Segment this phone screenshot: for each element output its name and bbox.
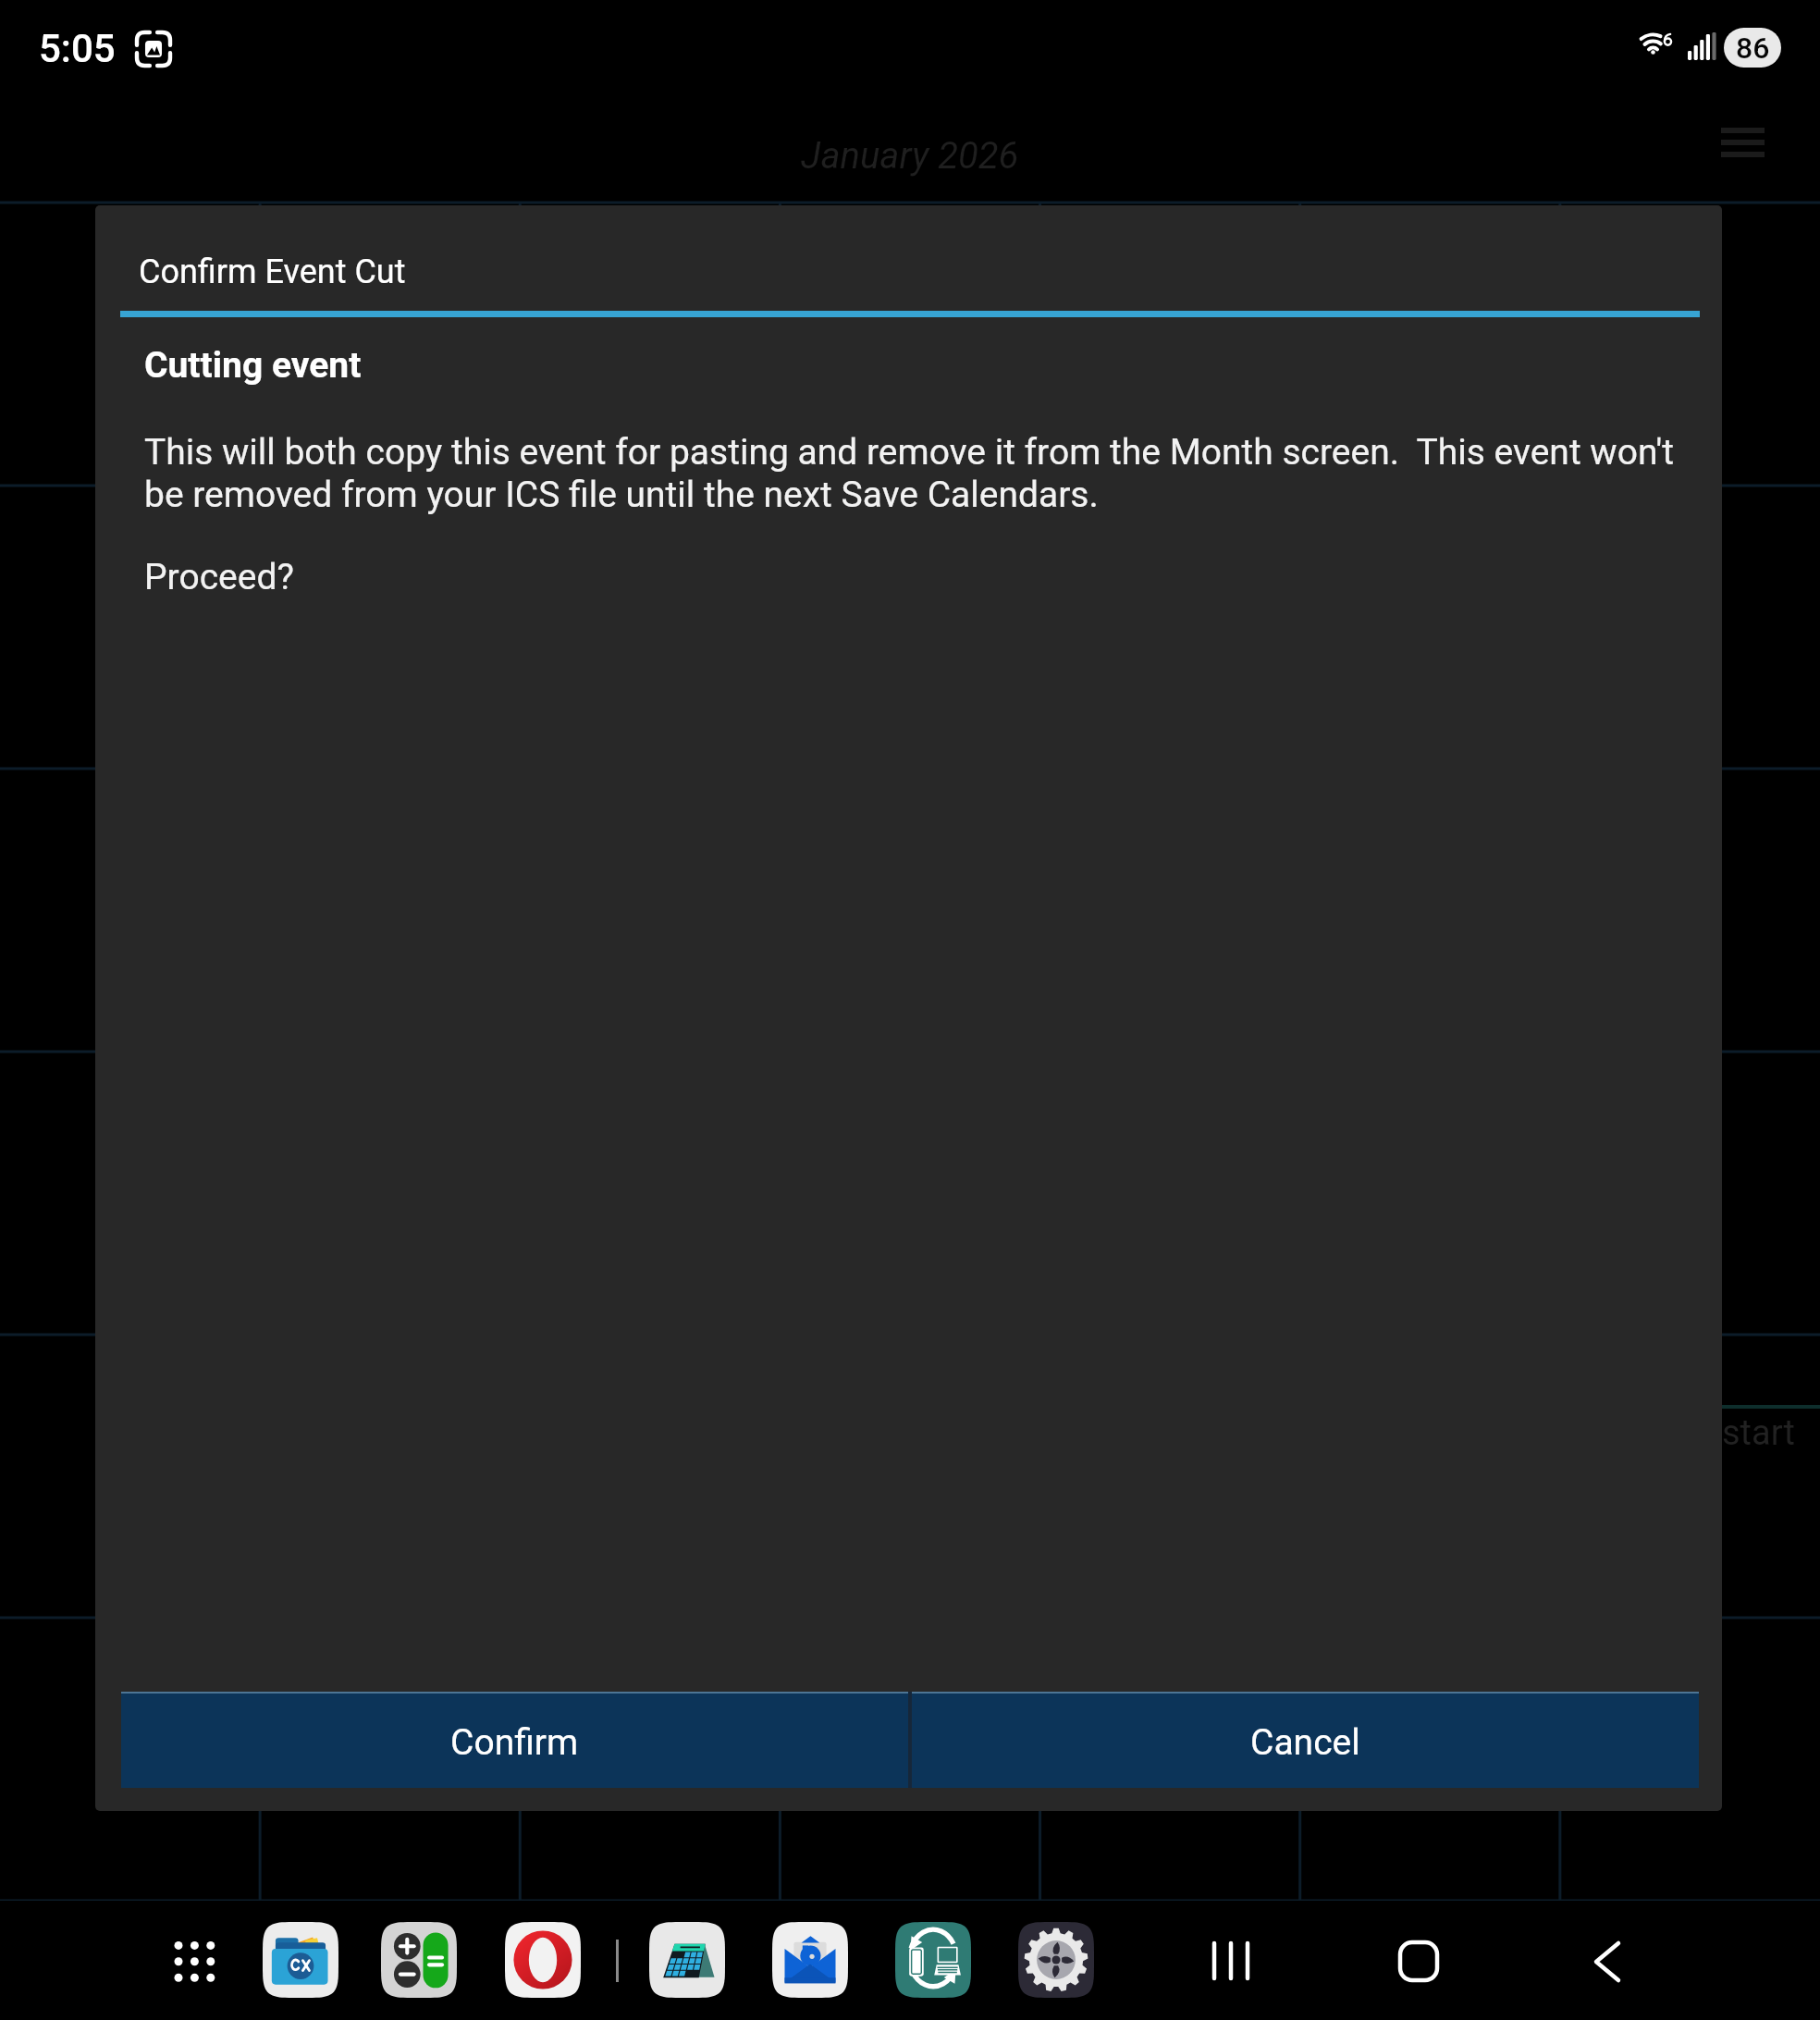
button[interactable]: Home [1377, 1921, 1460, 2004]
button[interactable]: Apps [157, 1928, 224, 1995]
staticText: January 2026 [801, 134, 1019, 178]
staticText: This will both copy this event for pasti… [144, 431, 1689, 515]
staticText: Confirm Event Cut [139, 252, 406, 291]
staticText: Cutting event [144, 344, 362, 387]
staticText: 5:05 [39, 26, 116, 71]
staticText: Confirm [450, 1721, 579, 1764]
button[interactable]: Settings [1018, 1922, 1094, 1998]
button[interactable]: Cancel [912, 1692, 1699, 1788]
button[interactable]: CX File Explorer [263, 1922, 338, 1998]
button[interactable]: Confirm [121, 1692, 908, 1788]
button[interactable]: Back [1566, 1921, 1649, 2004]
button[interactable]: Calendar [649, 1922, 725, 1998]
button[interactable]: Sync [895, 1922, 971, 1998]
button[interactable]: BlueMail [772, 1922, 848, 1998]
button[interactable]: Menu [1702, 102, 1779, 179]
button[interactable]: Calculator [381, 1922, 457, 1998]
staticText: Cancel [1250, 1721, 1360, 1764]
staticText: 86 [1736, 31, 1770, 66]
button[interactable]: Recents [1195, 1921, 1278, 2004]
staticText: start [1722, 1412, 1795, 1454]
button[interactable]: Opera Browser [505, 1922, 581, 1998]
staticText: Proceed? [144, 556, 294, 598]
